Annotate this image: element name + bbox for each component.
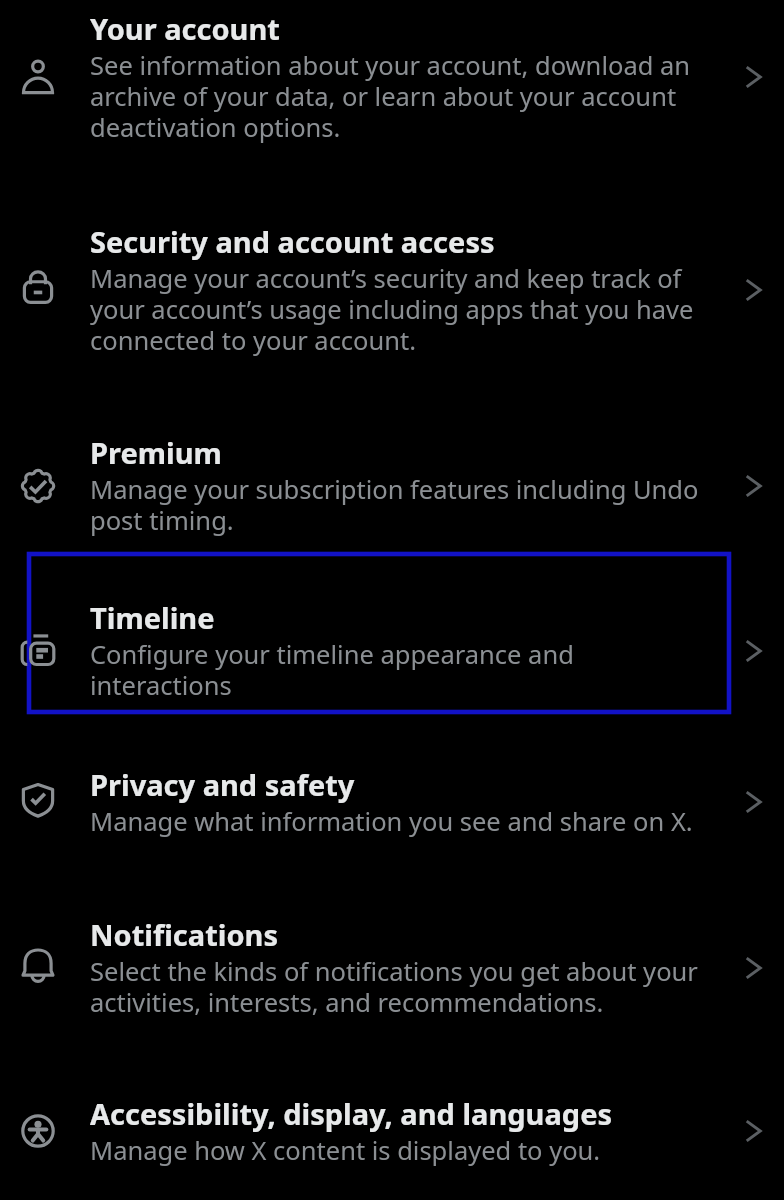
button[interactable]: Accessibility, display, and languages xyxy=(0,1057,784,1200)
other: Open Timeline xyxy=(745,640,762,662)
staticText: Your account xyxy=(90,9,280,48)
button[interactable]: Security and account access xyxy=(0,184,784,396)
button[interactable]: Premium xyxy=(0,396,784,568)
button[interactable]: Timeline xyxy=(0,568,784,734)
staticText: Accessibility, display, and languages xyxy=(90,1094,613,1133)
other: Open Notifications xyxy=(745,957,762,979)
other: Open Premium xyxy=(745,475,762,497)
button[interactable]: Privacy and safety xyxy=(0,734,784,877)
button[interactable]: Notifications xyxy=(0,877,784,1057)
staticText: Notifications xyxy=(90,915,278,954)
other: Open Your account xyxy=(745,66,762,88)
other: Open Accessibility, display, and languag… xyxy=(745,1120,762,1142)
staticText: See information about your account, down… xyxy=(90,48,700,145)
button[interactable]: Your account xyxy=(0,0,784,184)
staticText: Select the kinds of notifications you ge… xyxy=(90,954,700,1020)
other: Open Privacy and safety xyxy=(745,791,762,813)
staticText: Premium xyxy=(90,433,222,472)
staticText: Manage your account’s security and keep … xyxy=(90,261,700,358)
staticText: Privacy and safety xyxy=(90,765,355,804)
staticText: Timeline xyxy=(90,598,215,637)
staticText: Manage what information you see and shar… xyxy=(90,804,693,839)
staticText: Manage your subscription features includ… xyxy=(90,472,700,538)
staticText: Security and account access xyxy=(90,222,495,261)
other: Open Security and account access xyxy=(745,279,762,301)
staticText: Manage how X content is displayed to you… xyxy=(90,1133,601,1168)
staticText: Configure your timeline appearance and i… xyxy=(90,637,700,703)
